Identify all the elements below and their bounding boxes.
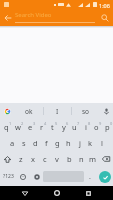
staticText: z: [19, 154, 23, 164]
staticText: f: [45, 138, 48, 148]
staticText: t: [51, 122, 54, 132]
button[interactable]: z: [14, 151, 27, 167]
staticText: 1:06: [99, 2, 110, 9]
button[interactable]: Recent apps: [84, 186, 93, 200]
button[interactable]: so: [72, 103, 99, 119]
button[interactable]: h: [63, 135, 74, 151]
staticText: k: [88, 138, 93, 148]
staticText: m: [89, 154, 97, 164]
staticText: 8: [88, 121, 91, 126]
staticText: i: [85, 122, 87, 132]
button[interactable]: v: [51, 151, 63, 167]
button[interactable]: c: [39, 151, 51, 167]
button[interactable]: .: [84, 167, 96, 186]
staticText: 4: [44, 121, 47, 126]
button[interactable]: a: [6, 135, 18, 151]
staticText: 3: [33, 121, 36, 126]
button[interactable]: Shift: [0, 151, 14, 167]
staticText: l: [101, 138, 103, 148]
staticText: a: [10, 138, 15, 148]
button[interactable]: 2: [12, 119, 24, 135]
button[interactable]: Enter: [99, 171, 111, 183]
button[interactable]: b: [63, 151, 75, 167]
staticText: 7: [77, 121, 80, 126]
button[interactable]: ok: [15, 103, 43, 119]
button[interactable]: j: [74, 135, 85, 151]
button[interactable]: Google search: [0, 103, 15, 119]
staticText: d: [33, 138, 38, 148]
staticText: 0: [110, 121, 113, 126]
button[interactable]: Search: [96, 9, 113, 26]
button[interactable]: n: [75, 151, 87, 167]
staticText: h: [66, 138, 71, 148]
staticText: 5: [55, 121, 58, 126]
button[interactable]: k: [85, 135, 96, 151]
button[interactable]: 5: [47, 119, 58, 135]
button[interactable]: d: [30, 135, 41, 151]
button[interactable]: 8: [80, 119, 91, 135]
staticText: Search Video: [15, 11, 52, 19]
button[interactable]: 9: [91, 119, 102, 135]
button[interactable]: Settings: [30, 167, 43, 186]
staticText: 2: [21, 121, 24, 126]
staticText: so: [82, 107, 90, 116]
staticText: x: [31, 154, 35, 164]
button[interactable]: s: [18, 135, 30, 151]
button[interactable]: 7: [69, 119, 80, 135]
staticText: w: [15, 122, 21, 132]
staticText: p: [105, 122, 110, 132]
button[interactable]: Backspace: [99, 151, 113, 167]
button[interactable]: ?123: [0, 167, 16, 186]
staticText: u: [72, 122, 77, 132]
staticText: I: [56, 107, 59, 116]
button[interactable]: 6: [58, 119, 69, 135]
staticText: 1: [9, 121, 12, 126]
staticText: .: [89, 172, 91, 182]
staticText: e: [28, 122, 33, 132]
staticText: y: [62, 122, 66, 132]
staticText: 9: [99, 121, 102, 126]
button[interactable]: x: [27, 151, 39, 167]
staticText: r: [40, 122, 44, 132]
staticText: g: [55, 138, 60, 148]
button[interactable]: f: [41, 135, 52, 151]
button[interactable]: Voice input: [99, 103, 113, 119]
staticText: ?123: [3, 173, 14, 180]
button[interactable]: 3: [24, 119, 36, 135]
staticText: n: [79, 154, 84, 164]
staticText: 6: [66, 121, 69, 126]
staticText: b: [67, 154, 72, 164]
button[interactable]: 4: [36, 119, 47, 135]
staticText: ok: [25, 107, 33, 116]
staticText: o: [94, 122, 99, 132]
staticText: s: [22, 138, 26, 148]
button[interactable]: l: [96, 135, 107, 151]
staticText: q: [4, 122, 9, 132]
button[interactable]: 1: [0, 119, 12, 135]
button[interactable]: I: [44, 103, 71, 119]
button[interactable]: g: [52, 135, 63, 151]
staticText: v: [55, 154, 59, 164]
button[interactable]: m: [87, 151, 99, 167]
staticText: c: [43, 154, 47, 164]
button[interactable]: Home: [52, 186, 61, 200]
button[interactable]: Back: [0, 9, 16, 26]
button[interactable]: 0: [102, 119, 113, 135]
button[interactable]: Back: [20, 186, 29, 200]
staticText: j: [79, 138, 81, 148]
button[interactable]: Emoji: [16, 167, 30, 186]
